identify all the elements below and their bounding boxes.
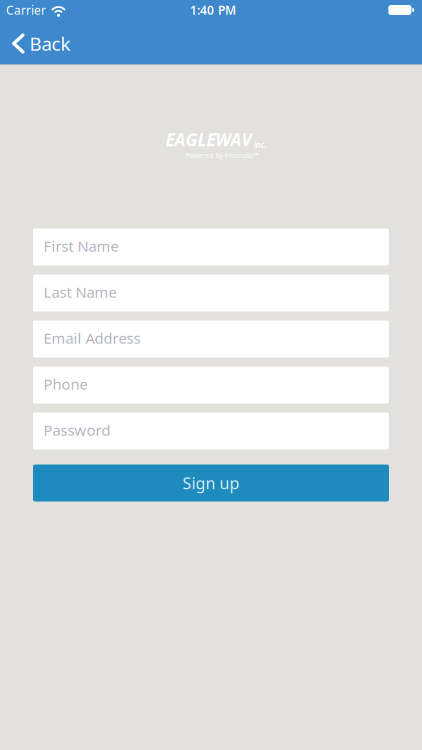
staticText: Carrier: [6, 2, 46, 18]
button[interactable]: Email Address: [33, 320, 389, 357]
staticText: Powered by Knomatic™: [185, 151, 258, 160]
staticText: Last Name: [43, 282, 116, 302]
button[interactable]: Phone: [33, 366, 389, 403]
button[interactable]: Sign up: [33, 464, 389, 501]
staticText: Back: [30, 31, 71, 56]
staticText: Phone: [43, 374, 87, 394]
staticText: inc.: [253, 139, 266, 150]
staticText: 1:40: [190, 2, 214, 18]
staticText: EAGLEWAV: [165, 128, 251, 151]
button[interactable]: Last Name: [33, 274, 389, 311]
staticText: PM: [218, 2, 236, 18]
staticText: First Name: [43, 236, 118, 256]
staticText: Email Address: [43, 328, 140, 348]
button[interactable]: Password: [33, 412, 389, 449]
staticText: Password: [43, 420, 110, 440]
button[interactable]: Back: [0, 28, 71, 56]
staticText: Sign up: [182, 472, 239, 494]
button[interactable]: First Name: [33, 228, 389, 265]
